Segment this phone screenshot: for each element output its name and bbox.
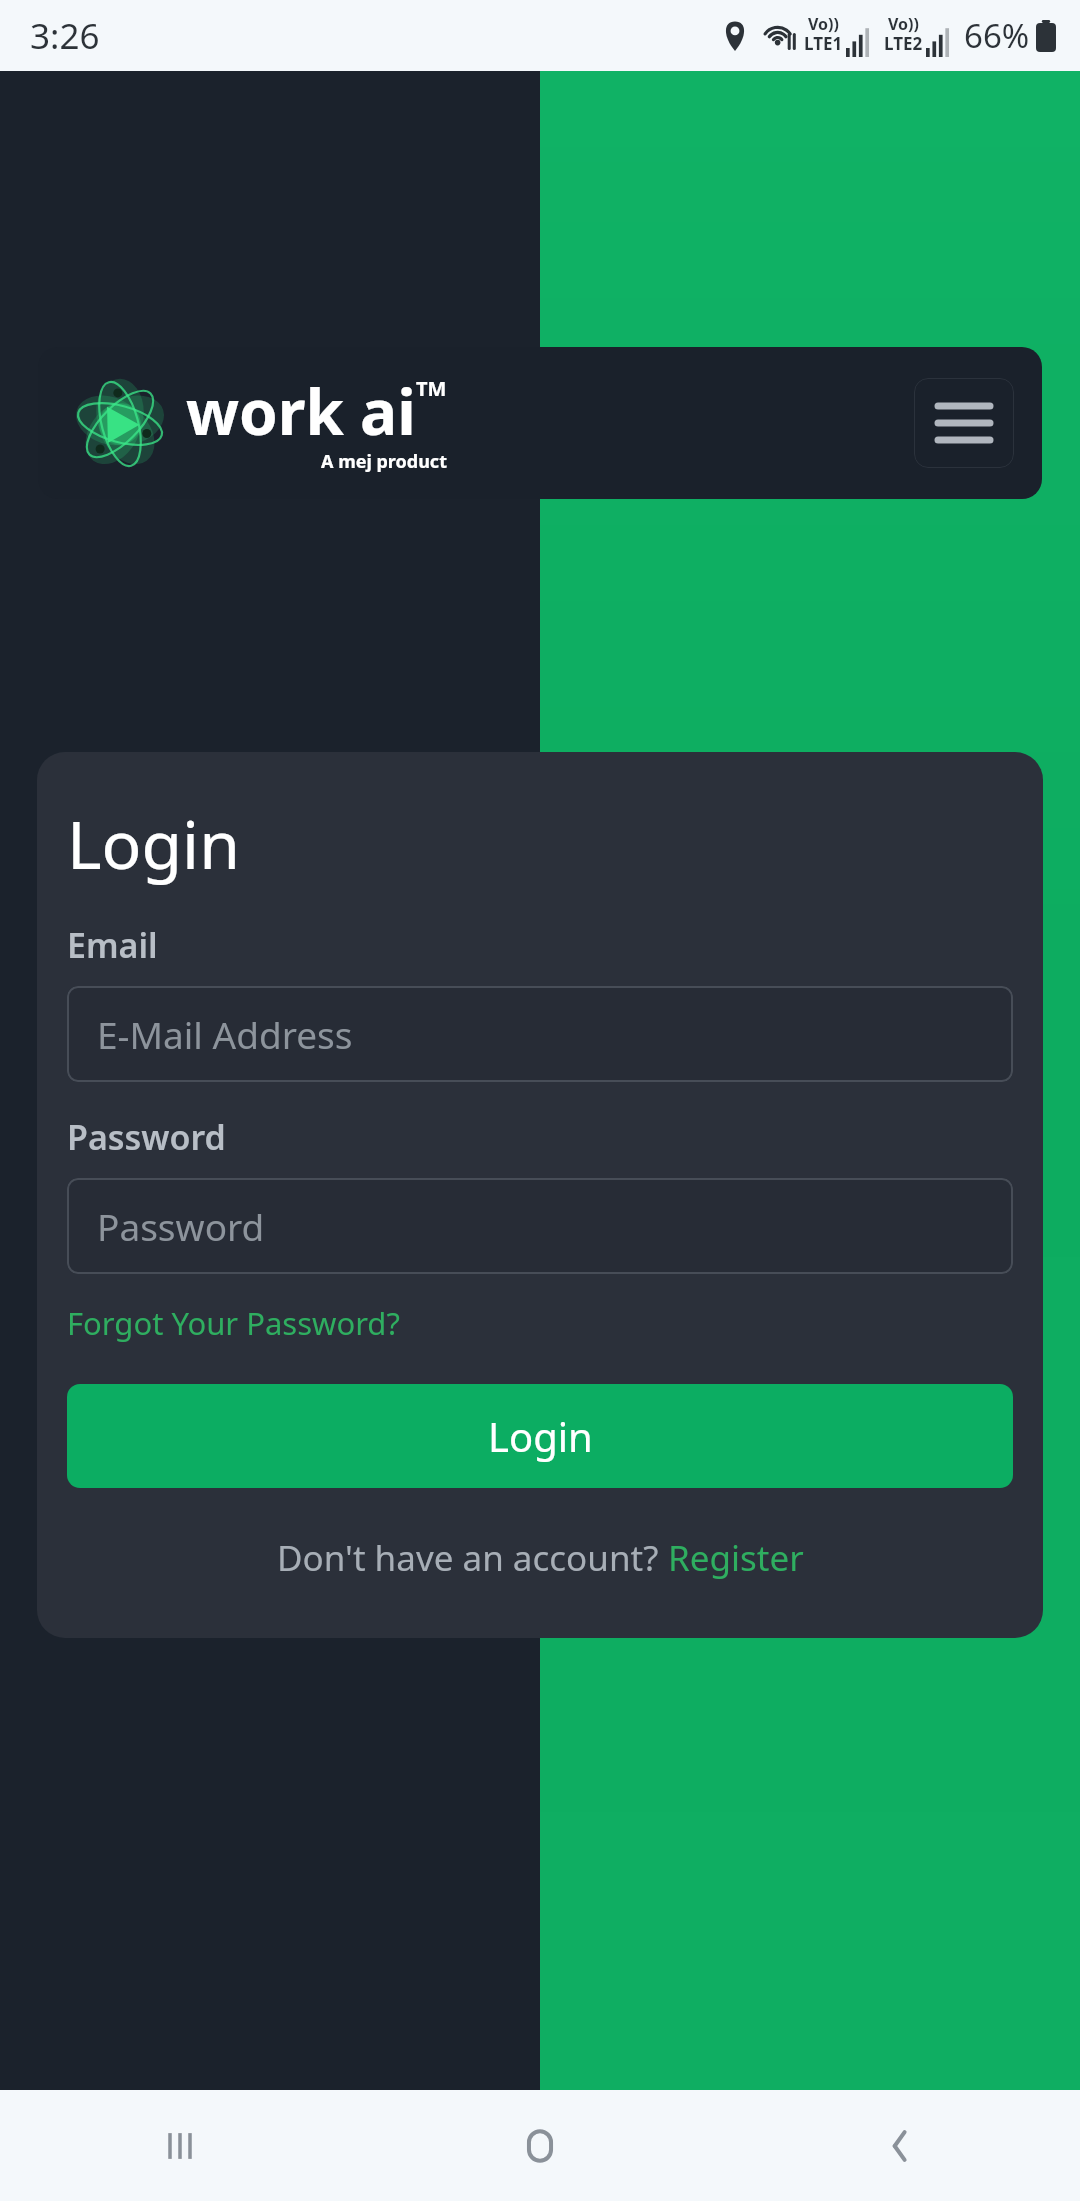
button[interactable]: Password [67, 1178, 1013, 1274]
button[interactable]: Register [668, 1534, 804, 1582]
button[interactable]: Home [360, 2090, 720, 2201]
staticText: Email [67, 922, 158, 968]
button[interactable]: Open menu [914, 378, 1014, 468]
staticText: Vo)) [808, 13, 839, 35]
staticText: TM [416, 375, 447, 402]
staticText: Register [668, 1534, 804, 1582]
staticText: Forgot Your Password? [67, 1302, 400, 1344]
button[interactable]: Forgot Your Password? [67, 1302, 400, 1344]
staticText: Vo)) [888, 13, 919, 35]
button[interactable]: E-Mail Address [67, 986, 1013, 1082]
staticText: LTE2 [884, 32, 923, 55]
button[interactable]: Recent apps [0, 2090, 360, 2201]
staticText: Don't have an account? [277, 1534, 668, 1582]
staticText: E-Mail Address [97, 1009, 353, 1059]
staticText: 66% [964, 13, 1030, 58]
button[interactable]: Back [720, 2090, 1080, 2201]
staticText: work ai [186, 369, 416, 453]
staticText: Login [488, 1409, 593, 1463]
staticText: A mej product [321, 449, 447, 474]
staticText: Password [97, 1201, 265, 1251]
staticText: 3:26 [30, 12, 100, 60]
button[interactable]: Login [67, 1384, 1013, 1488]
staticText: Password [67, 1114, 226, 1160]
staticText: LTE1 [804, 32, 843, 55]
staticText: Login [67, 798, 240, 888]
